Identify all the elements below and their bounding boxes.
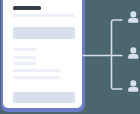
button[interactable]: Team member 1: [128, 11, 139, 23]
button[interactable]: Team member 2: [128, 47, 139, 59]
button[interactable]: Team member 3: [128, 80, 139, 92]
button[interactable]: [3, 0, 82, 108]
